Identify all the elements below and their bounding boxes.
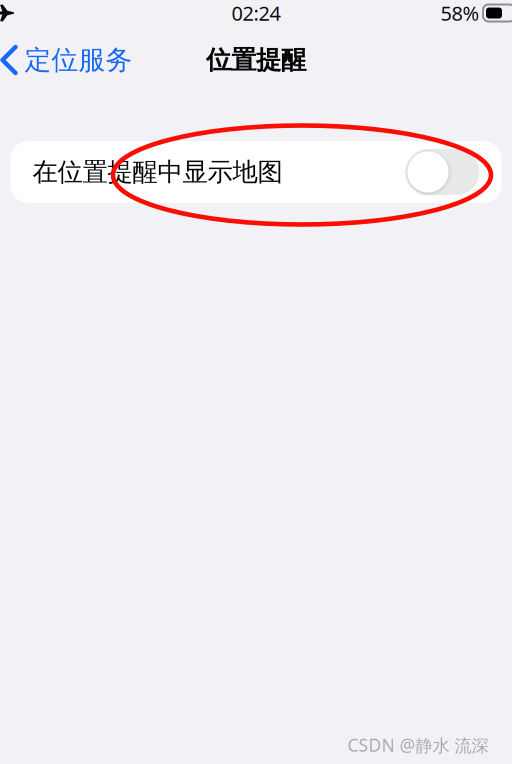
staticText: 位置提醒 [206, 44, 306, 75]
staticText: CSDN @静水 流深 [347, 733, 488, 756]
staticText: 定位服务 [24, 44, 132, 76]
button[interactable]: 在位置提醒中显示地图 [10, 141, 501, 203]
staticText: 02:24 [231, 0, 280, 26]
button[interactable]: 返回 定位服务 [0, 37, 138, 83]
staticText: 58% [440, 0, 479, 26]
staticText: 在位置提醒中显示地图 [32, 156, 282, 187]
